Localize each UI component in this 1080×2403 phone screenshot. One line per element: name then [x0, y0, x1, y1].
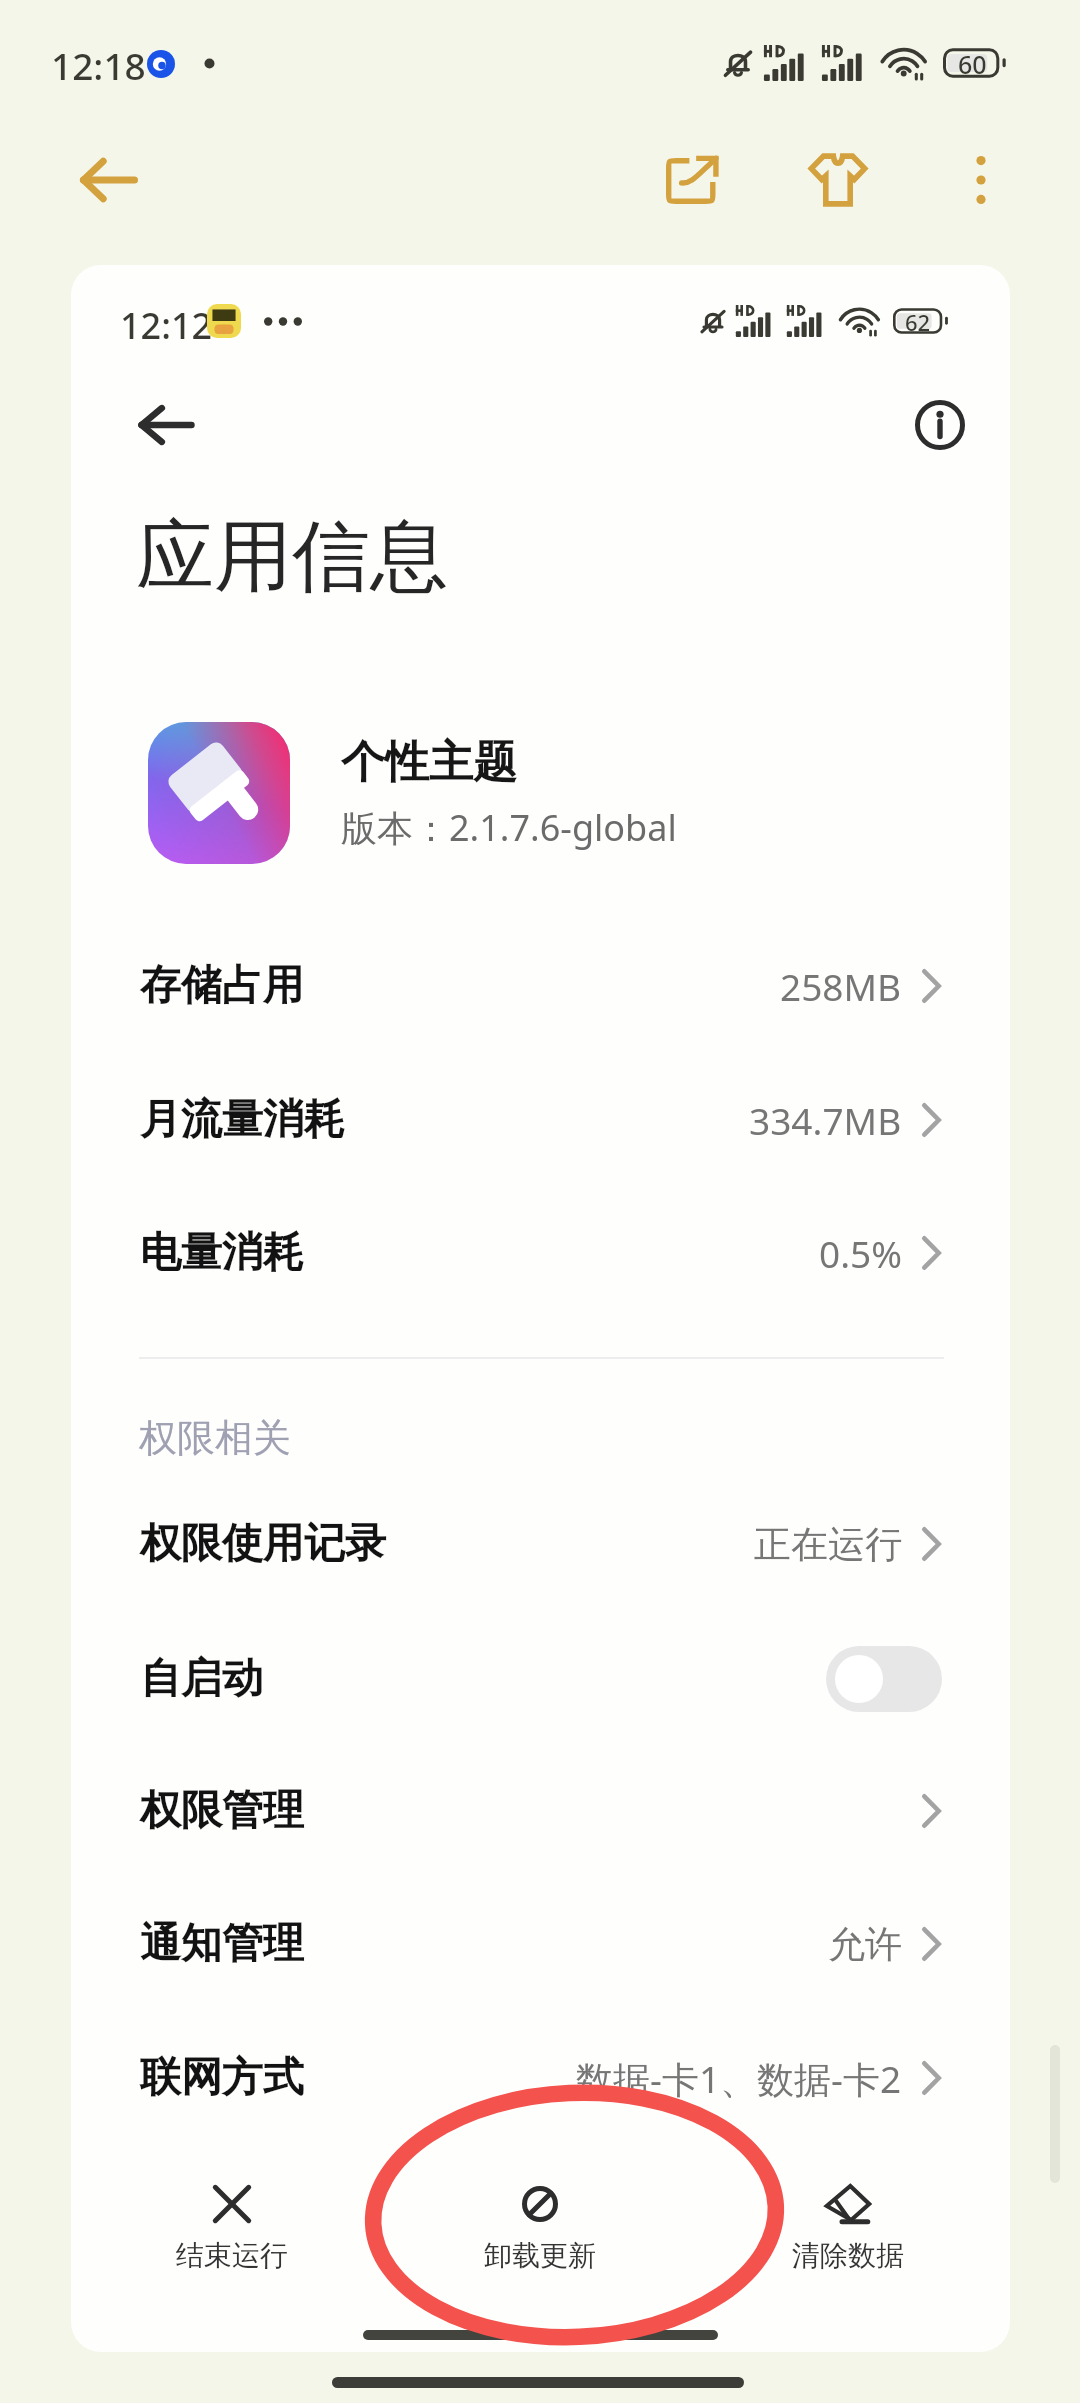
staticText: 12:12	[120, 301, 213, 350]
staticText: 个性主题	[341, 735, 517, 790]
button[interactable]: 自启动	[140, 1629, 942, 1729]
staticText: 334.7MB	[749, 1095, 902, 1145]
button[interactable]: 清除数据	[708, 2184, 988, 2304]
staticText: 电量消耗	[140, 1227, 304, 1279]
staticText: 自启动	[140, 1653, 263, 1705]
staticText: 允许	[828, 1921, 902, 1968]
button[interactable]: 联网方式	[140, 2028, 941, 2128]
staticText: 月流量消耗	[140, 1094, 345, 1146]
button[interactable]: 月流量消耗	[140, 1070, 941, 1170]
button[interactable]: 卸载更新	[400, 2184, 680, 2304]
button[interactable]: Back	[118, 377, 214, 473]
staticText: 258MB	[780, 961, 902, 1011]
button[interactable]: 存储占用	[140, 936, 941, 1036]
button[interactable]: 结束运行	[92, 2184, 372, 2304]
staticText: 权限管理	[140, 1785, 304, 1837]
staticText: 联网方式	[140, 2052, 304, 2104]
button[interactable]: Themes	[782, 124, 894, 236]
staticText: 通知管理	[140, 1918, 304, 1970]
button[interactable]: Share	[636, 124, 748, 236]
staticText: 权限相关	[139, 1414, 291, 1462]
button[interactable]: More options	[927, 126, 1035, 234]
staticText: 数据-卡1、数据-卡2	[576, 2053, 902, 2104]
staticText: 0.5%	[819, 1228, 902, 1278]
staticText: 结束运行	[176, 2238, 288, 2273]
button[interactable]: 通知管理	[140, 1894, 941, 1994]
staticText: 存储占用	[140, 960, 304, 1012]
button[interactable]: 权限使用记录	[140, 1494, 941, 1594]
button[interactable]: 电量消耗	[140, 1203, 941, 1303]
staticText: 版本：2.1.7.6-global	[341, 803, 677, 852]
staticText: 正在运行	[754, 1521, 902, 1568]
staticText: 62	[905, 307, 931, 333]
button[interactable]: 权限管理	[140, 1761, 941, 1861]
staticText: 卸载更新	[484, 2238, 596, 2273]
staticText: 应用信息	[136, 508, 448, 606]
staticText: 60	[958, 47, 987, 77]
button[interactable]: App details	[896, 381, 984, 469]
button[interactable]: Back	[53, 124, 165, 236]
staticText: 清除数据	[792, 2238, 904, 2273]
staticText: 权限使用记录	[140, 1518, 386, 1570]
staticText: 12:18	[51, 40, 146, 90]
